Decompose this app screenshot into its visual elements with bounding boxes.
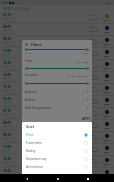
button[interactable]: Recent apps [84, 175, 91, 182]
staticText: nonstop [3, 137, 12, 140]
staticText: 2h 30m · SFO [3, 164, 16, 167]
button[interactable]: 08:05 [0, 24, 114, 35]
staticText: Price [26, 133, 34, 137]
staticText: 12:45 [3, 157, 11, 161]
staticText: nonstop [3, 149, 12, 152]
staticText: Delta [89, 50, 95, 53]
button[interactable]: 11:00 [0, 48, 114, 59]
button[interactable]: Travel time [26, 139, 88, 147]
staticText: Hide long layovers [25, 106, 52, 110]
staticText: nonstop [3, 29, 12, 32]
button[interactable]: 12:45 [0, 60, 114, 71]
staticText: Delta [89, 170, 95, 173]
staticText: 2h 30m · SFO [3, 116, 16, 119]
staticText: $164 [104, 79, 110, 82]
staticText: nonstop [3, 17, 12, 20]
button[interactable]: Home [54, 175, 61, 182]
staticText: nonstop [3, 41, 12, 44]
staticText: Delta [89, 110, 95, 113]
button[interactable]: Rating [26, 147, 88, 155]
button[interactable]: 07:15 [0, 12, 114, 23]
staticText: 2h 30m · SFO [3, 56, 16, 59]
staticText: economy [89, 114, 99, 117]
staticText: APPLY [82, 117, 91, 121]
staticText: 2h 30m · SFO [3, 128, 16, 131]
button[interactable]: 12:45 [0, 156, 114, 167]
staticText: $186 [104, 127, 110, 130]
staticText: 2h 30m · SFO [3, 44, 16, 47]
staticText: $298 [104, 91, 110, 94]
staticText: economy [89, 66, 99, 69]
staticText: $248 [104, 115, 110, 118]
staticText: 2h 30m · SFO [3, 140, 16, 143]
staticText: Delta [89, 158, 95, 161]
staticText: Delta [89, 122, 95, 125]
button[interactable]: Airlines [25, 96, 89, 103]
staticText: Delta [89, 26, 95, 29]
staticText: All [82, 98, 85, 101]
staticText: SFO → LAX, 12 Jun [7, 7, 30, 11]
button[interactable]: 14:20 [0, 72, 114, 83]
staticText: $275 [104, 67, 110, 70]
staticText: nonstop [3, 77, 12, 80]
staticText: Delta [89, 74, 95, 77]
staticText: 2h 30m · SFO [3, 20, 16, 23]
staticText: Filters [31, 42, 42, 47]
staticText: nonstop [3, 173, 12, 176]
staticText: Airports [25, 90, 37, 94]
button[interactable]: 09:30 [0, 36, 114, 47]
button[interactable]: 11:00 [0, 144, 114, 155]
staticText: Departure city [26, 157, 47, 161]
staticText: $186 [104, 31, 110, 34]
staticText: 100% [105, 1, 112, 4]
staticText: 2h 30m · SFO [3, 32, 16, 35]
staticText: nonstop [3, 65, 12, 68]
staticText: economy [89, 162, 99, 165]
button[interactable]: 15:10 [0, 84, 114, 95]
staticText: Travel time [26, 141, 42, 145]
button[interactable]: 16:35 [0, 96, 114, 107]
staticText: nonstop [3, 161, 12, 164]
staticText: Delta [89, 62, 95, 65]
staticText: $230 [104, 103, 110, 106]
button[interactable]: Arrival time [26, 163, 88, 171]
staticText: 4:30 [2, 1, 8, 5]
button[interactable]: Back [23, 175, 30, 182]
staticText: $275 [104, 163, 110, 166]
staticText: nonstop [3, 113, 12, 116]
button[interactable]: 07:15 [0, 108, 114, 119]
button[interactable]: Search [3, 5, 111, 12]
staticText: $248 [104, 19, 110, 22]
staticText: 11:00 [3, 49, 11, 53]
staticText: Duration [25, 73, 38, 77]
other: Search [3, 7, 6, 10]
staticText: 14:20 [3, 169, 11, 173]
staticText: Delta [89, 86, 95, 89]
button[interactable]: 14:20 [0, 168, 114, 179]
button[interactable]: Departure city [26, 155, 88, 163]
button[interactable]: APPLY [82, 117, 91, 121]
staticText: Price [25, 59, 32, 63]
staticText: economy [89, 126, 99, 129]
staticText: nonstop [3, 53, 12, 56]
staticText: $201 [104, 151, 110, 154]
staticText: All [82, 90, 85, 93]
staticText: economy [89, 150, 99, 153]
staticText: $120 - $480 [75, 60, 89, 63]
staticText: 1 stop [81, 51, 89, 54]
staticText: nonstop [3, 89, 12, 92]
button[interactable]: 08:05 [0, 120, 114, 131]
staticText: Airlines [25, 98, 36, 102]
button[interactable]: Hide long layovers [25, 104, 89, 111]
button[interactable]: Airports [25, 88, 89, 95]
staticText: economy [89, 102, 99, 105]
staticText: Delta [89, 134, 95, 137]
staticText: economy [89, 138, 99, 141]
button[interactable]: 09:30 [0, 132, 114, 143]
button[interactable]: Price [26, 131, 88, 139]
staticText: 09:30 [3, 37, 11, 41]
